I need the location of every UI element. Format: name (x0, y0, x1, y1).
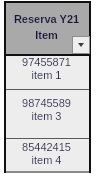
staticText: 85442415 (4, 141, 89, 153)
button[interactable]: Reserva Y21 (5, 3, 90, 55)
staticText: item 4 (4, 154, 89, 166)
button[interactable]: 98745589 (5, 90, 90, 138)
staticText: 98745589 (4, 97, 89, 109)
staticText: item 3 (4, 110, 89, 122)
staticText: Reserva Y21 (4, 13, 89, 25)
staticText: item 1 (4, 69, 89, 81)
staticText: 97455871 (4, 56, 89, 68)
button[interactable]: Filter column (72, 36, 90, 54)
button[interactable]: 97455871 (5, 56, 90, 89)
staticText: Item (4, 29, 89, 41)
button[interactable]: 85442415 (5, 139, 90, 171)
